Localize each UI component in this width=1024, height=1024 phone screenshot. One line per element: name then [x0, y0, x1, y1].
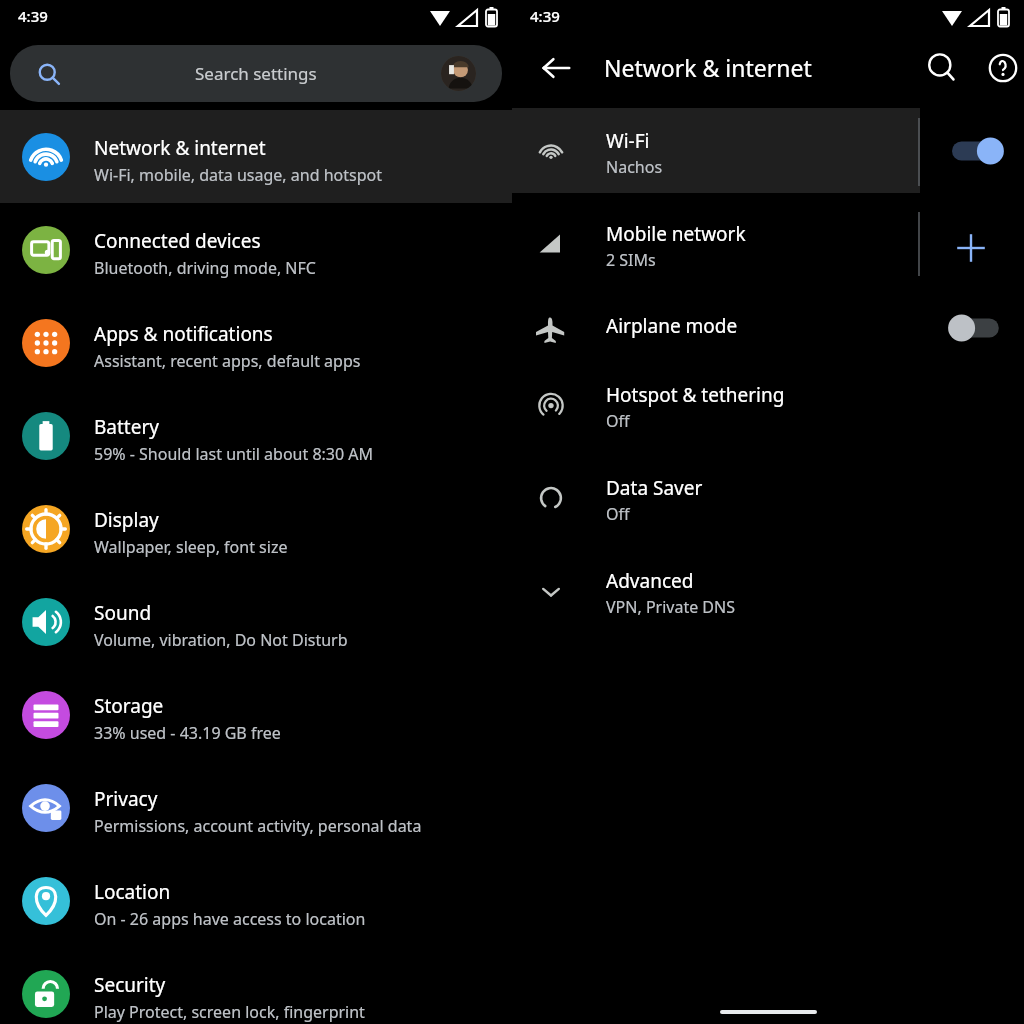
button[interactable]: Wi-Fi: [512, 108, 1024, 193]
staticText: Privacy: [94, 786, 158, 812]
staticText: Storage: [94, 693, 164, 719]
button[interactable]: Airplane mode toggle off: [946, 312, 1006, 344]
button[interactable]: Display: [0, 482, 512, 575]
staticText: Advanced: [606, 568, 694, 594]
button[interactable]: Mobile network: [512, 201, 1024, 286]
staticText: 2 SIMs: [606, 249, 656, 271]
staticText: Wi-Fi: [606, 128, 650, 154]
staticText: Wi-Fi, mobile, data usage, and hotspot: [94, 164, 382, 186]
staticText: VPN, Private DNS: [606, 596, 735, 618]
staticText: On - 26 apps have access to location: [94, 908, 366, 930]
button[interactable]: Account: [441, 56, 476, 91]
staticText: Off: [606, 410, 630, 432]
staticText: Search settings: [195, 62, 317, 85]
button[interactable]: Network & internet: [0, 110, 512, 203]
staticText: Off: [606, 503, 630, 525]
staticText: Mobile network: [606, 221, 746, 247]
staticText: Hotspot & tethering: [606, 382, 785, 408]
staticText: Apps & notifications: [94, 321, 273, 347]
staticText: Airplane mode: [606, 313, 738, 339]
staticText: Wallpaper, sleep, font size: [94, 536, 288, 558]
staticText: Security: [94, 972, 166, 998]
staticText: Location: [94, 879, 171, 905]
staticText: Play Protect, screen lock, fingerprint: [94, 1001, 365, 1023]
button[interactable]: Hotspot & tethering: [512, 362, 1024, 447]
button[interactable]: Back: [534, 46, 578, 90]
staticText: Sound: [94, 600, 152, 626]
staticText: Connected devices: [94, 228, 261, 254]
staticText: 59% - Should last until about 8:30 AM: [94, 443, 374, 465]
button[interactable]: Add network: [948, 225, 994, 271]
button[interactable]: Connected devices: [0, 203, 512, 296]
button[interactable]: Apps & notifications: [0, 296, 512, 389]
button[interactable]: Wi-Fi toggle on: [946, 135, 1006, 167]
button[interactable]: Search: [920, 46, 964, 90]
staticText: Battery: [94, 414, 159, 440]
button[interactable]: Sound: [0, 575, 512, 668]
staticText: Network & internet: [94, 135, 266, 161]
button[interactable]: Privacy: [0, 761, 512, 854]
staticText: Data Saver: [606, 475, 703, 501]
staticText: 4:39: [18, 6, 48, 26]
staticText: Assistant, recent apps, default apps: [94, 350, 361, 372]
staticText: Permissions, account activity, personal …: [94, 815, 422, 837]
staticText: Volume, vibration, Do Not Disturb: [94, 629, 348, 651]
button[interactable]: Help: [981, 46, 1024, 90]
staticText: Display: [94, 507, 159, 533]
button[interactable]: Data Saver: [512, 455, 1024, 540]
staticText: Nachos: [606, 156, 663, 178]
staticText: 33% used - 43.19 GB free: [94, 722, 281, 744]
button[interactable]: Advanced: [512, 548, 1024, 633]
staticText: Bluetooth, driving mode, NFC: [94, 257, 316, 279]
button[interactable]: Search settings: [10, 45, 502, 102]
staticText: 4:39: [530, 6, 560, 26]
button[interactable]: Security: [0, 947, 512, 1024]
staticText: Network & internet: [604, 52, 812, 83]
button[interactable]: Location: [0, 854, 512, 947]
button[interactable]: Storage: [0, 668, 512, 761]
button[interactable]: Airplane mode: [512, 294, 1024, 362]
button[interactable]: Battery: [0, 389, 512, 482]
